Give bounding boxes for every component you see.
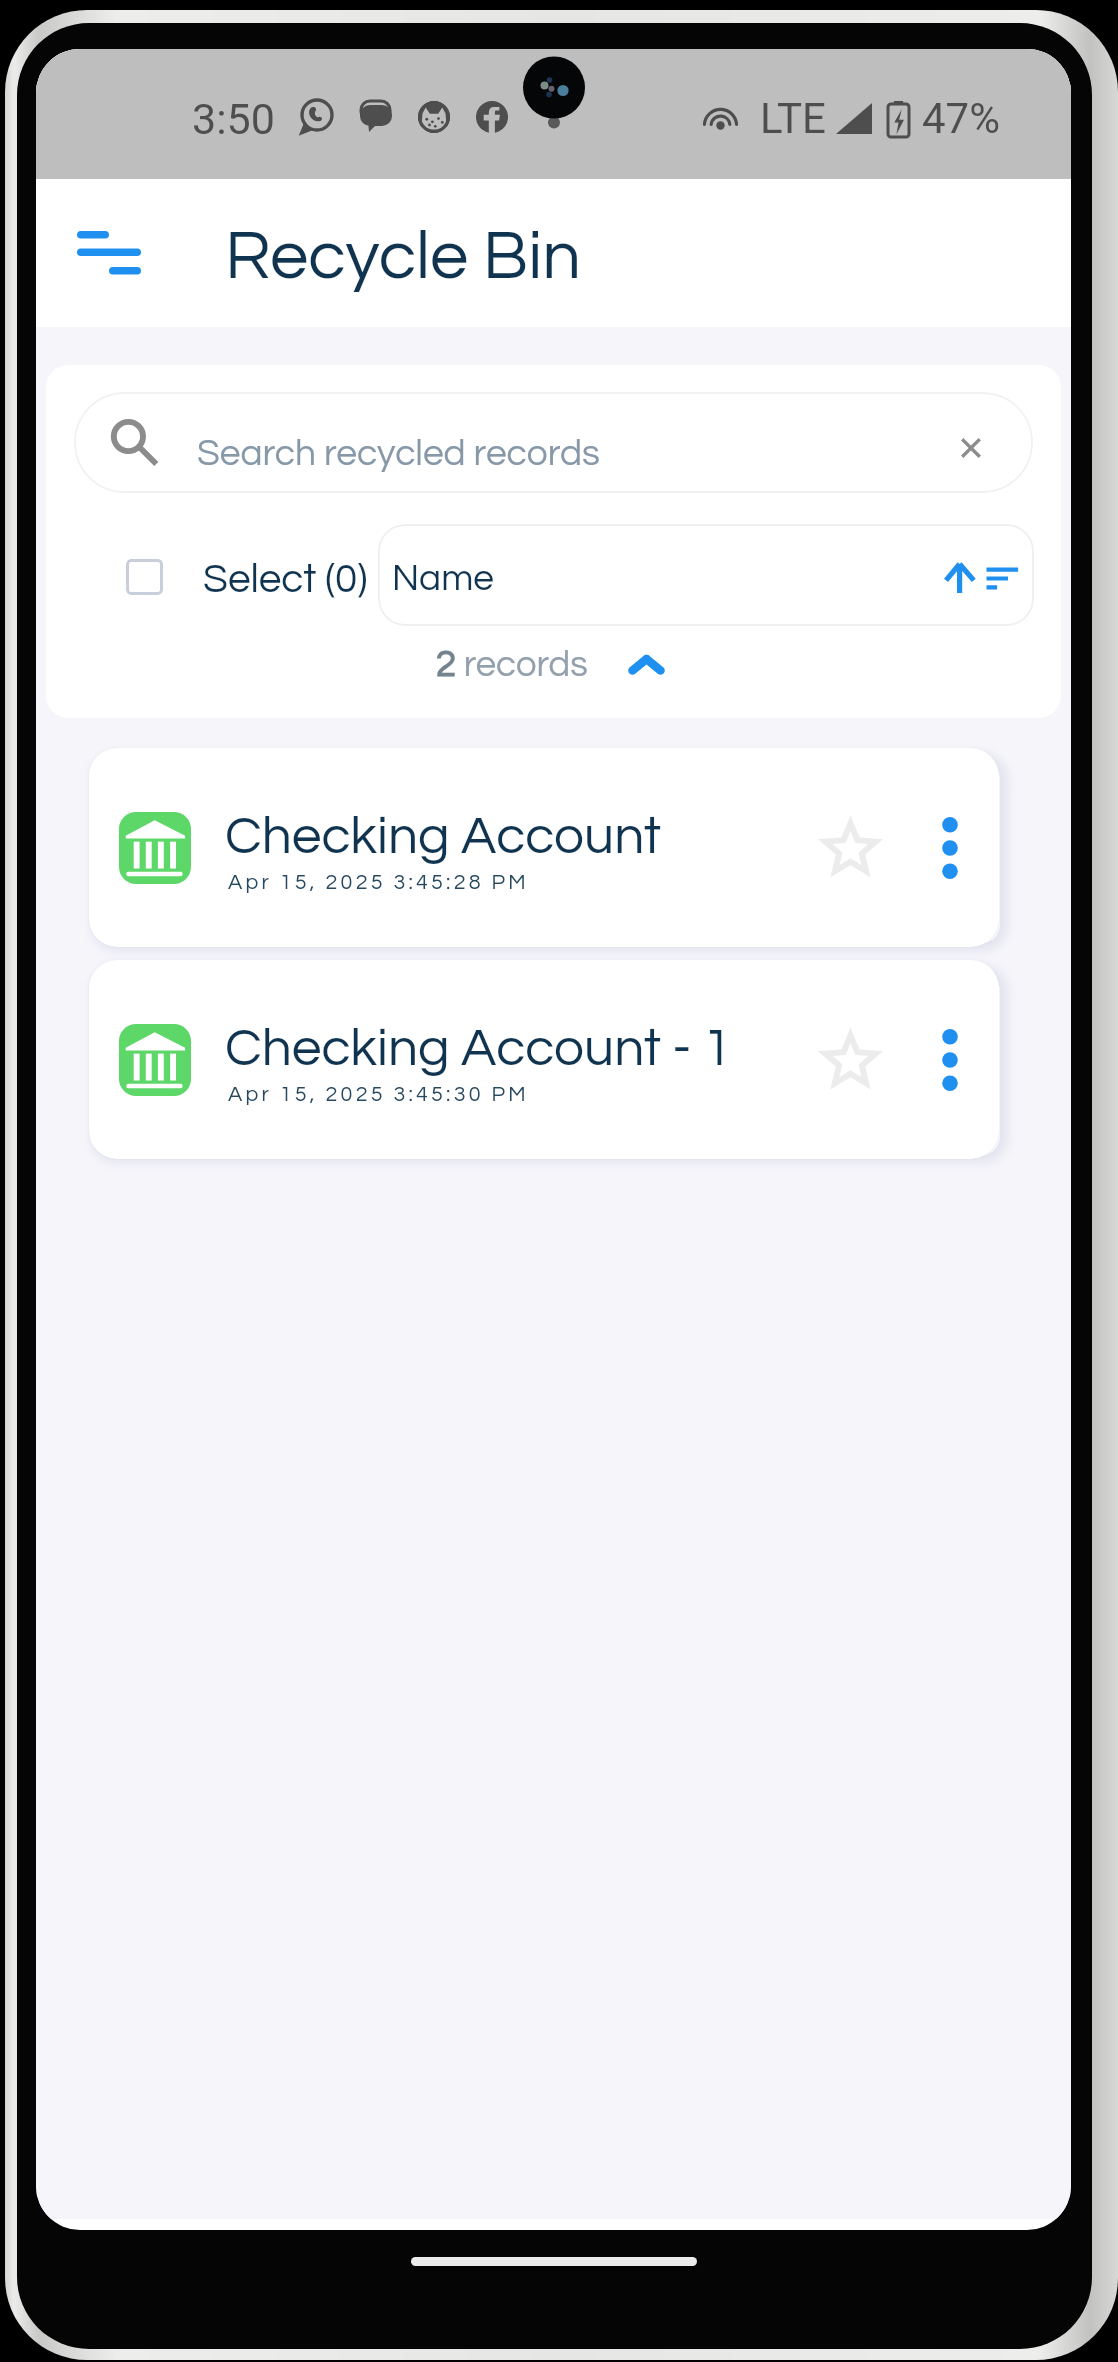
staticText: Apr 15, 2025 3:45:30 PM xyxy=(228,1083,529,1105)
staticText: Recycle Bin xyxy=(225,222,581,293)
staticText: LTE xyxy=(760,94,826,143)
button[interactable]: Clear search xyxy=(947,419,995,467)
staticText: 47% xyxy=(922,94,1000,143)
staticText: Select (0) xyxy=(203,559,368,601)
staticText: Search recycled records xyxy=(197,435,600,473)
button[interactable]: Sort ascending xyxy=(946,555,1019,595)
staticText: Apr 15, 2025 3:45:28 PM xyxy=(228,871,529,893)
staticText: Name xyxy=(392,560,494,598)
button[interactable]: Menu xyxy=(66,210,152,296)
staticText: 3:50 xyxy=(192,94,275,144)
button[interactable]: 2 records xyxy=(46,646,1058,683)
button[interactable]: Checking Account - 1 xyxy=(89,960,999,1159)
button[interactable]: More options xyxy=(929,813,971,883)
button[interactable]: Search recycled records xyxy=(74,392,1033,493)
button[interactable]: Favourite xyxy=(815,813,885,883)
staticText: Checking Account xyxy=(225,809,662,864)
button[interactable]: Select (0) xyxy=(126,554,368,596)
staticText: 2 records xyxy=(436,646,588,683)
button[interactable]: Favourite xyxy=(815,1025,885,1095)
button[interactable]: Checking Account xyxy=(89,748,999,947)
button[interactable]: More options xyxy=(929,1025,971,1095)
staticText: Checking Account - 1 xyxy=(225,1021,733,1076)
button[interactable]: Name xyxy=(378,524,1034,626)
